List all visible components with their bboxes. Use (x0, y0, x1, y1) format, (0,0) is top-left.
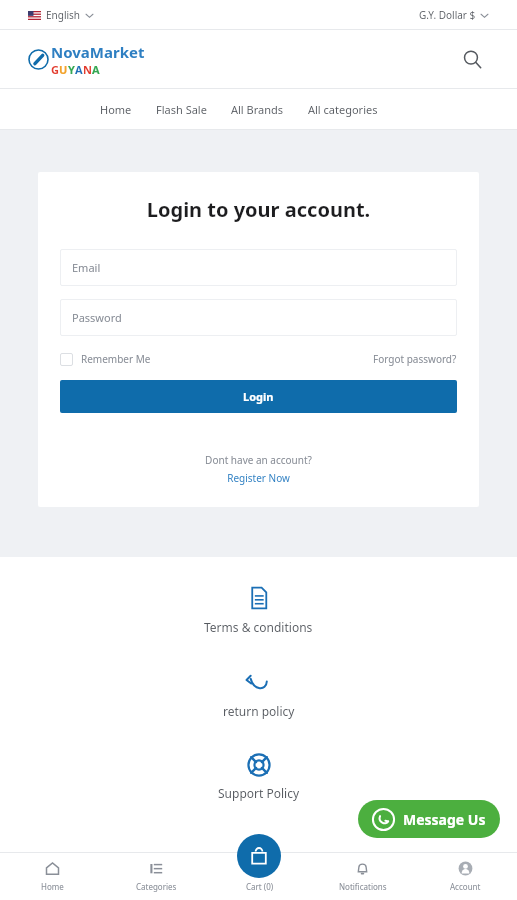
button[interactable]: Login (60, 380, 457, 413)
button[interactable]: Notifications (311, 853, 414, 900)
button[interactable]: Password (60, 299, 457, 336)
button[interactable]: Cart (0) (208, 853, 311, 900)
button[interactable]: Home (88, 94, 144, 125)
button[interactable]: Search (455, 42, 489, 76)
staticText: Login (243, 389, 274, 404)
staticText: Remember Me (81, 352, 151, 366)
button[interactable]: Flash Sale (144, 94, 219, 125)
staticText: Y (68, 62, 75, 77)
button[interactable]: Forgot password? (373, 352, 457, 366)
staticText: Message Us (403, 810, 486, 829)
staticText: All Brands (231, 102, 284, 117)
staticText: Notifications (339, 881, 387, 892)
staticText: Cart (0) (246, 881, 274, 892)
button[interactable]: Register Now (60, 471, 457, 485)
staticText: Login to your account. (60, 196, 457, 223)
staticText: Support Policy (218, 785, 300, 801)
staticText: G (51, 62, 59, 77)
staticText: A (92, 62, 100, 77)
button[interactable]: Remember Me (60, 352, 151, 366)
staticText: Register Now (60, 471, 457, 485)
button[interactable]: Categories (104, 853, 208, 900)
staticText: Terms & conditions (204, 619, 313, 635)
staticText: Home (41, 881, 64, 892)
staticText: Home (100, 102, 132, 117)
staticText: Password (72, 310, 122, 325)
button[interactable]: Message Us (358, 800, 500, 838)
staticText: N (83, 62, 92, 77)
staticText: All categories (308, 102, 378, 117)
button[interactable]: return policy (207, 665, 311, 723)
button[interactable]: Terms & conditions (188, 581, 329, 639)
staticText: English (46, 8, 81, 22)
button[interactable]: Support Policy (202, 749, 316, 805)
button[interactable]: Cart (237, 834, 281, 878)
staticText: A (75, 62, 83, 77)
staticText: Email (72, 260, 101, 275)
staticText: return policy (223, 703, 295, 719)
button[interactable]: All Brands (219, 94, 296, 125)
button[interactable]: All categories (296, 94, 390, 125)
staticText: Dont have an account? (60, 453, 457, 467)
staticText: Categories (136, 881, 177, 892)
button[interactable]: G.Y. Dollar $ (419, 8, 489, 22)
staticText: Forgot password? (373, 352, 457, 366)
staticText: NovaMarket (51, 42, 145, 62)
button[interactable]: English (28, 8, 94, 22)
button[interactable]: Account (414, 853, 517, 900)
button[interactable]: NovaMarket (28, 42, 145, 77)
button[interactable]: Home (0, 853, 104, 900)
staticText: U (59, 62, 68, 77)
staticText: Account (450, 881, 481, 892)
staticText: Flash Sale (156, 102, 207, 117)
staticText: G.Y. Dollar $ (419, 8, 476, 22)
button[interactable]: Email (60, 249, 457, 286)
